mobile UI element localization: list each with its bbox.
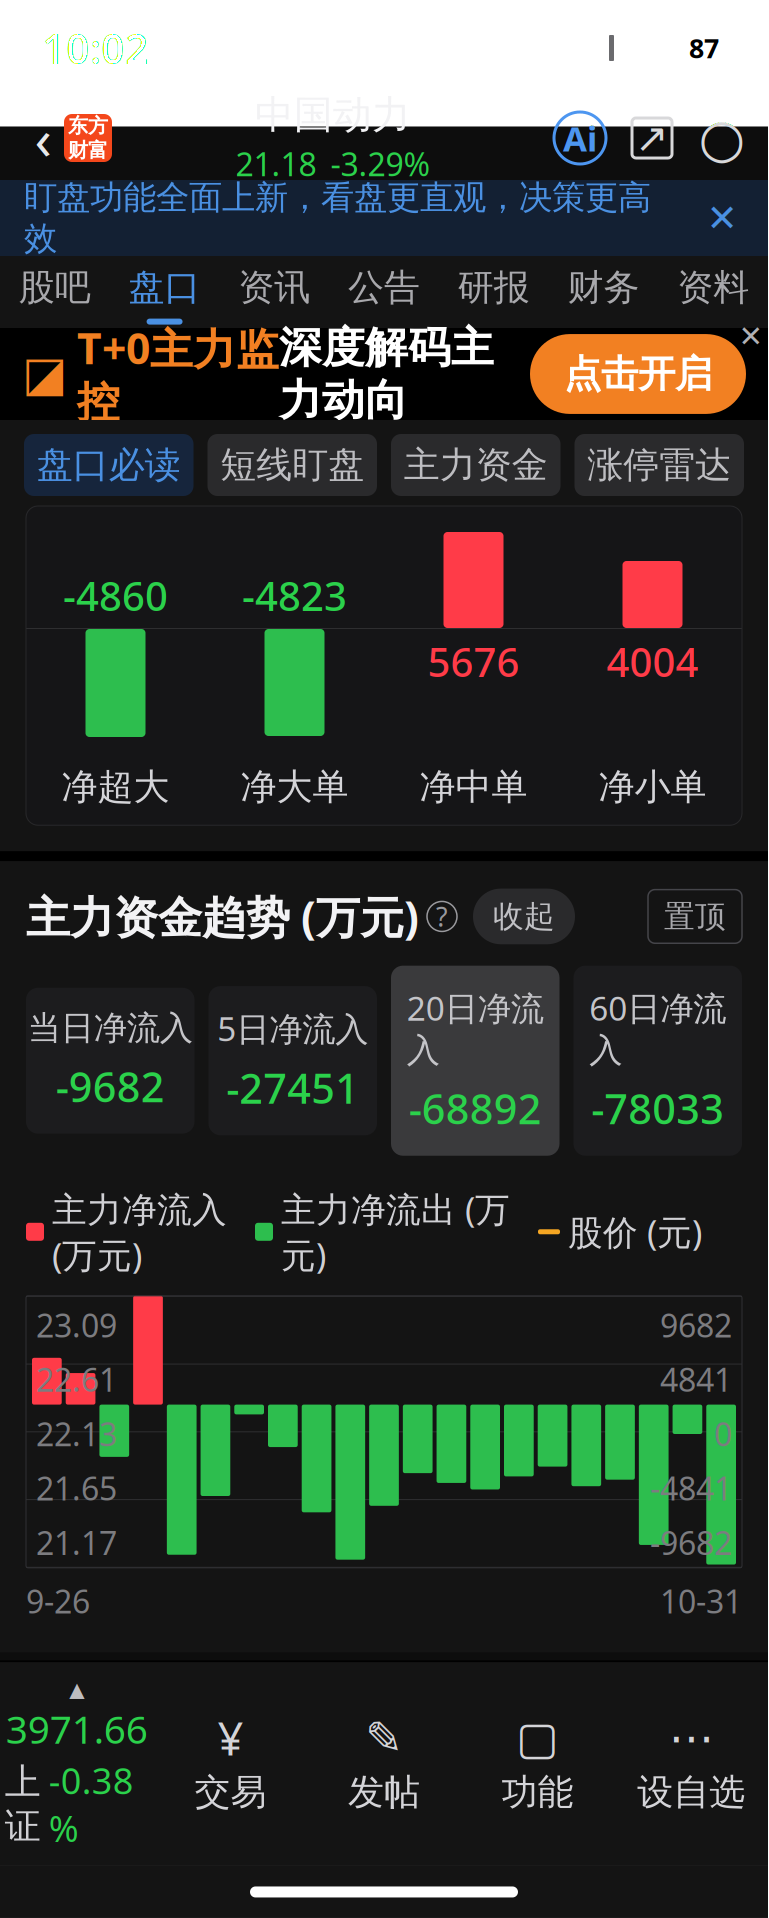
staticText: 22.61	[36, 1358, 117, 1401]
button[interactable]: 公告	[329, 251, 439, 333]
staticText: 净中单	[419, 765, 527, 809]
staticText: 盘口必读	[37, 443, 181, 487]
staticText: 20日净流入	[407, 986, 544, 1071]
staticText: 10-31	[660, 1580, 742, 1622]
staticText: 财务	[567, 265, 639, 310]
staticText: -4823	[242, 569, 347, 622]
button[interactable]: Search	[698, 112, 746, 164]
staticText: 23.09	[36, 1304, 117, 1346]
staticText: ✕	[706, 197, 737, 239]
staticText: 股价 (元)	[568, 1209, 702, 1255]
staticText: -9682	[56, 1059, 165, 1114]
button[interactable]: 20日净流入	[391, 966, 559, 1156]
button[interactable]: 资料	[658, 251, 768, 333]
staticText: 60日净流入	[589, 986, 726, 1071]
button[interactable]: 5日净流入	[208, 986, 377, 1135]
staticText: 财富	[68, 138, 108, 163]
staticText: ✕	[738, 320, 763, 353]
staticText: 涨停雷达	[587, 443, 731, 487]
button[interactable]: Add to watchlist	[614, 1716, 768, 1814]
staticText: 主力资金	[404, 443, 548, 487]
button[interactable]: 资讯	[219, 251, 329, 333]
staticText: 研报	[458, 265, 530, 310]
staticText: -9682	[650, 1521, 732, 1564]
staticText: 9-26	[26, 1580, 90, 1622]
staticText: 交易	[194, 1770, 266, 1814]
staticText: 10:02	[42, 21, 149, 75]
button[interactable]: Post	[307, 1716, 461, 1814]
staticText: -78033	[591, 1081, 724, 1136]
staticText: -0.38%	[49, 1756, 134, 1852]
staticText: ⋯	[669, 1712, 714, 1764]
staticText: 东方	[68, 113, 108, 138]
staticText: ▢	[516, 1712, 559, 1764]
staticText: 4841	[660, 1358, 732, 1401]
button[interactable]: 置顶	[648, 890, 742, 943]
staticText: ?	[436, 899, 448, 934]
button[interactable]: 涨停雷达	[574, 434, 744, 496]
staticText: 资料	[677, 265, 749, 310]
button[interactable]: Back	[22, 110, 64, 166]
button[interactable]: Share	[628, 112, 676, 164]
staticText: 设自选	[637, 1770, 745, 1814]
staticText: 5676	[427, 635, 519, 688]
staticText: -4860	[63, 569, 168, 622]
staticText: Ai	[563, 115, 597, 161]
staticText: 3971.66	[6, 1703, 148, 1754]
button[interactable]: Help	[427, 901, 457, 931]
staticText: ▲	[69, 1678, 84, 1701]
staticText: 股吧	[19, 265, 91, 310]
staticText: 0	[714, 1413, 732, 1455]
button[interactable]: 当日净流入	[26, 988, 194, 1134]
staticText: 净小单	[598, 765, 706, 809]
button[interactable]: East Money home	[64, 114, 112, 162]
staticText: ↗	[635, 115, 669, 161]
button[interactable]: 点击开启	[530, 334, 746, 414]
staticText: 功能	[502, 1770, 574, 1814]
button[interactable]: 盘口必读	[24, 434, 193, 496]
staticText: ◪	[22, 347, 67, 401]
staticText: 点击开启	[564, 351, 712, 397]
staticText: 中国动力	[255, 91, 411, 138]
staticText: 9682	[660, 1304, 732, 1346]
staticText: 收起	[493, 898, 555, 935]
button[interactable]: Shanghai index 3971.66 down 0.38 percent	[0, 1678, 154, 1852]
button[interactable]: 主力资金	[391, 434, 560, 496]
staticText: -3.29%	[330, 142, 430, 185]
button[interactable]: Functions	[461, 1716, 614, 1814]
button[interactable]: 股吧	[0, 251, 110, 333]
button[interactable]: 收起	[473, 889, 575, 944]
staticText: 盯盘功能全面上新，看盘更直观，决策更高效	[24, 177, 651, 259]
staticText: 置顶	[664, 898, 726, 935]
staticText: 主力资金趋势 (万元)	[26, 887, 419, 946]
staticText: 发帖	[348, 1770, 420, 1814]
staticText: 资讯	[238, 265, 310, 310]
staticText: 盘口	[129, 265, 201, 310]
staticText: 4004	[606, 635, 698, 688]
staticText: 主力净流入 (万元)	[52, 1186, 227, 1278]
button[interactable]: AI assistant	[554, 112, 606, 164]
staticText: 87	[689, 30, 719, 66]
staticText: -68892	[409, 1081, 542, 1136]
button[interactable]: Trade	[154, 1716, 307, 1814]
staticText: ‹	[34, 101, 51, 175]
button[interactable]: 研报	[439, 251, 549, 333]
button[interactable]: 60日净流入	[573, 966, 742, 1156]
staticText: 深度解码主力动向	[279, 322, 494, 426]
staticText: 21.17	[36, 1521, 117, 1564]
staticText: 21.65	[36, 1467, 117, 1509]
button[interactable]: Close ad	[734, 319, 768, 353]
button[interactable]: 盘口	[110, 251, 219, 333]
staticText: ¥	[217, 1708, 243, 1768]
staticText: 净超大	[61, 765, 169, 809]
staticText: 21.18	[235, 142, 316, 185]
staticText: 5日净流入	[217, 1006, 368, 1050]
staticText: 主力净流出 (万元)	[281, 1186, 510, 1278]
button[interactable]: 财务	[549, 251, 658, 333]
button[interactable]: Close banner	[700, 196, 744, 240]
staticText: 短线盯盘	[220, 443, 364, 487]
button[interactable]: 短线盯盘	[207, 434, 377, 496]
staticText: 22.13	[36, 1413, 117, 1455]
staticText: ○	[698, 108, 745, 168]
staticText: -4841	[650, 1467, 732, 1509]
